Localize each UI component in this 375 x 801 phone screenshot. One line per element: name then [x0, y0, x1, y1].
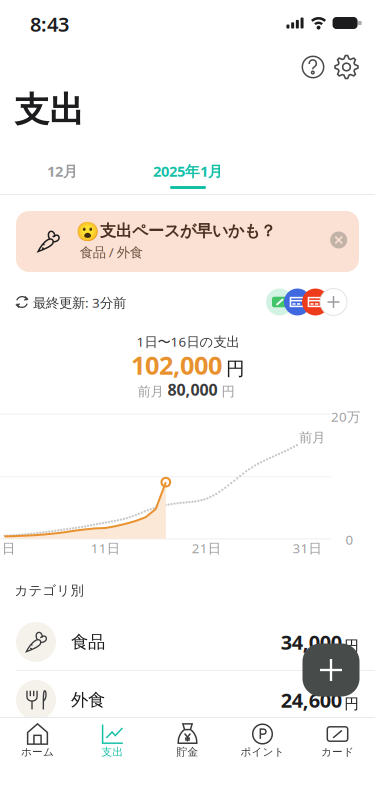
staticText: 前月: [299, 429, 325, 446]
button[interactable]: カード: [300, 718, 375, 766]
staticText: 支出: [101, 745, 123, 758]
button[interactable]: Help: [293, 48, 333, 86]
button[interactable]: Add expense: [302, 643, 359, 696]
button[interactable]: 支出: [75, 718, 150, 766]
staticText: ホーム: [21, 745, 54, 758]
button[interactable]: 貯金: [150, 718, 225, 766]
staticText: 2025年1月: [153, 161, 223, 181]
staticText: ポイント: [240, 745, 284, 758]
staticText: 外食: [71, 689, 105, 711]
button[interactable]: 12月: [12, 149, 112, 193]
button[interactable]: 最終更新: 3分前: [16, 288, 134, 316]
staticText: 80,000: [167, 379, 217, 400]
staticText: 食品: [71, 631, 105, 653]
staticText: 😮: [76, 221, 99, 243]
staticText: 31日: [292, 539, 321, 557]
button[interactable]: Settings: [326, 48, 366, 86]
staticText: 34,000: [281, 629, 342, 655]
staticText: 前月: [137, 383, 163, 400]
staticText: 支出: [14, 89, 84, 131]
staticText: 11日: [91, 539, 120, 557]
button[interactable]: 😮: [16, 211, 359, 272]
staticText: 円: [344, 637, 359, 655]
button[interactable]: ホーム: [0, 718, 75, 766]
staticText: 円: [226, 357, 245, 380]
button[interactable]: 外食: [0, 671, 375, 729]
button[interactable]: ポイント: [225, 718, 300, 766]
staticText: 21日: [192, 539, 221, 557]
staticText: 円: [344, 695, 359, 713]
staticText: 最終更新: 3分前: [33, 294, 126, 311]
staticText: 支出ペースが早いかも？: [100, 221, 276, 241]
staticText: 貯金: [176, 745, 198, 758]
staticText: 食品 / 外食: [80, 243, 143, 261]
staticText: カード: [321, 745, 354, 758]
button[interactable]: 食品: [0, 613, 375, 671]
staticText: 円: [221, 383, 234, 400]
staticText: 1日〜16日の支出: [136, 333, 239, 350]
staticText: 20万: [331, 408, 360, 425]
staticText: 8:43: [30, 11, 69, 37]
button[interactable]: 2025年1月: [138, 149, 238, 193]
staticText: 12月: [47, 161, 78, 181]
staticText: 1日: [0, 539, 15, 557]
staticText: 102,000: [131, 348, 222, 382]
staticText: カテゴリ別: [14, 582, 83, 599]
staticText: 24,600: [281, 687, 342, 713]
staticText: 0: [345, 531, 353, 548]
button[interactable]: Add account: [320, 288, 347, 315]
